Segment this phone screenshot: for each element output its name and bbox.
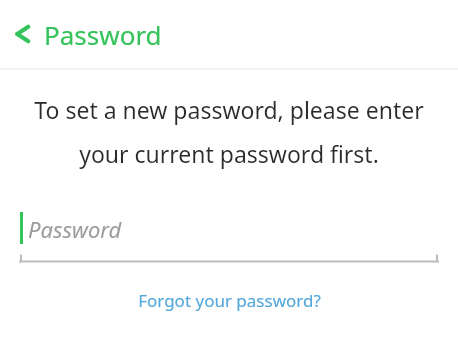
- staticText: Password: [28, 214, 122, 244]
- button[interactable]: Back to Password: [0, 0, 458, 68]
- button[interactable]: Forgot your password?: [128, 285, 331, 316]
- staticText: To set a new password, please enter your…: [16, 94, 442, 169]
- staticText: Password: [44, 17, 162, 52]
- button[interactable]: Password: [20, 207, 438, 263]
- staticText: Forgot your password?: [138, 289, 321, 312]
